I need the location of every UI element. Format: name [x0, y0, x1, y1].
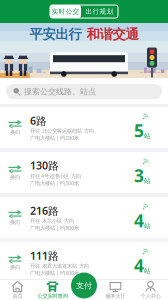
button[interactable]: 服务大厅: [98, 278, 133, 300]
staticText: 广电大楼站 | 约300米: [30, 180, 79, 187]
staticText: 换向: [10, 219, 20, 225]
button[interactable]: 公交实时查询: [35, 278, 70, 300]
staticText: 换向: [10, 174, 20, 180]
staticText: 搜索公交线路、站点: [24, 87, 96, 96]
staticText: 广电大楼站 | 约290米: [30, 134, 79, 141]
button[interactable]: 首页: [0, 278, 35, 300]
button[interactable]: 实时公交: [50, 5, 81, 18]
staticText: 站: [144, 132, 151, 140]
staticText: 111路: [30, 249, 59, 263]
staticText: 130路: [30, 158, 59, 172]
staticText: 公交实时查询: [37, 293, 67, 299]
staticText: 开往 北公交客运枢纽站 方向: [30, 128, 94, 134]
staticText: 开往 4号还漕小区 方向: [30, 172, 81, 180]
button[interactable]: 换向: [0, 197, 168, 238]
button[interactable]: 换向: [0, 242, 168, 283]
staticText: 首页: [12, 293, 22, 299]
staticText: 4: [134, 209, 144, 232]
staticText: 6路: [30, 114, 47, 128]
staticText: 平安出行: [29, 26, 81, 42]
button[interactable]: 出行规划: [81, 5, 118, 18]
staticText: 广电大楼站 | 约300米: [30, 269, 79, 276]
staticText: 出行规划: [85, 7, 113, 16]
button[interactable]: 换向: [0, 152, 168, 193]
staticText: 换向: [10, 264, 20, 270]
staticText: 换向: [10, 129, 20, 135]
staticText: 站: [144, 267, 151, 275]
staticText: 支付: [76, 281, 92, 290]
staticText: 广电大楼站 | 约300米: [30, 224, 79, 231]
staticText: 站: [144, 177, 151, 185]
button[interactable]: 个人中心: [133, 278, 168, 300]
button[interactable]: 搜索公交线路、站点: [0, 78, 168, 104]
button[interactable]: 支付: [71, 272, 97, 298]
staticText: 4: [134, 254, 144, 277]
staticText: 和谐交通: [86, 26, 138, 42]
staticText: 服务大厅: [105, 293, 125, 299]
staticText: 216路: [30, 204, 59, 218]
staticText: 个人中心: [140, 293, 160, 299]
staticText: 3: [134, 164, 144, 187]
button[interactable]: 换向: [0, 107, 168, 148]
staticText: 站: [144, 222, 151, 230]
staticText: 开往 木兰小区 方向: [30, 218, 74, 224]
staticText: 5: [134, 119, 144, 142]
staticText: 实时公交: [51, 7, 79, 16]
staticText: 开往 老君大道首末站 方向: [30, 263, 89, 269]
